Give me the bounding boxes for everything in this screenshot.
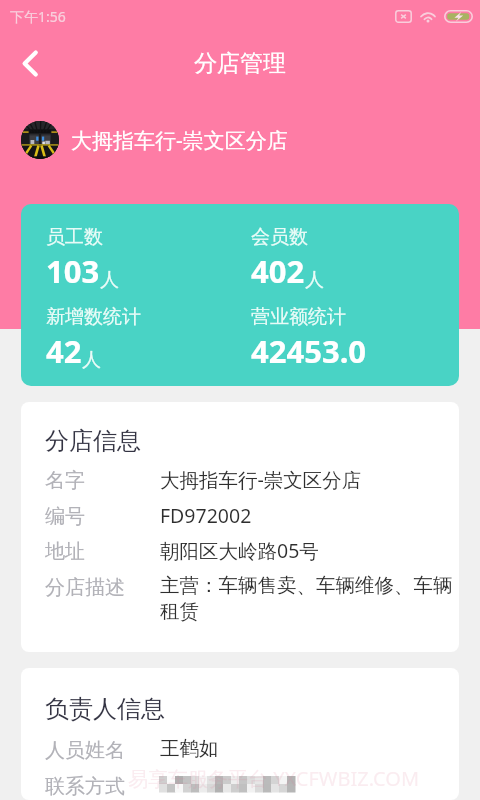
staticText: 分店信息 <box>45 426 141 456</box>
button[interactable]: Back <box>2 35 58 91</box>
staticText: 人 <box>100 268 119 292</box>
staticText: 营业额统计 <box>251 305 346 329</box>
staticText: 42 <box>46 330 82 372</box>
staticText: 人 <box>82 348 101 372</box>
staticText: 大拇指车行-崇文区分店 <box>160 466 459 493</box>
staticText: 王鹤如 <box>160 736 459 761</box>
staticText: 名字 <box>45 468 85 493</box>
staticText: FD972002 <box>160 502 459 529</box>
staticText: 员工数 <box>46 225 103 249</box>
staticText: 103 <box>46 250 100 292</box>
staticText: 负责人信息 <box>45 694 165 724</box>
staticText: 主营：车辆售卖、车辆维修、车辆租赁 <box>160 573 459 623</box>
staticText: 联系方式 <box>45 774 125 799</box>
staticText: 编号 <box>45 504 85 529</box>
button[interactable]: 负责人信息 <box>21 668 459 800</box>
staticText: 42453.0 <box>251 330 367 372</box>
staticText: 朝阳区大岭路05号 <box>160 537 459 564</box>
staticText: 分店描述 <box>45 575 125 600</box>
button[interactable]: 大拇指车行-崇文区分店 <box>0 113 480 167</box>
staticText: 会员数 <box>251 225 308 249</box>
staticText: 大拇指车行-崇文区分店 <box>71 126 288 155</box>
staticText: 分店管理 <box>194 49 286 78</box>
staticText: 下午1:56 <box>10 7 66 26</box>
staticText: 新增数统计 <box>46 305 141 329</box>
staticText: 易享车服务平台 YXCFWBIZ.COM <box>128 765 420 792</box>
button[interactable]: 分店信息 <box>21 402 459 652</box>
staticText: 人员姓名 <box>45 738 125 763</box>
staticText: 地址 <box>45 539 85 564</box>
staticText: 人 <box>305 268 324 292</box>
staticText: 402 <box>251 250 305 292</box>
button[interactable]: 员工数 <box>21 204 459 386</box>
